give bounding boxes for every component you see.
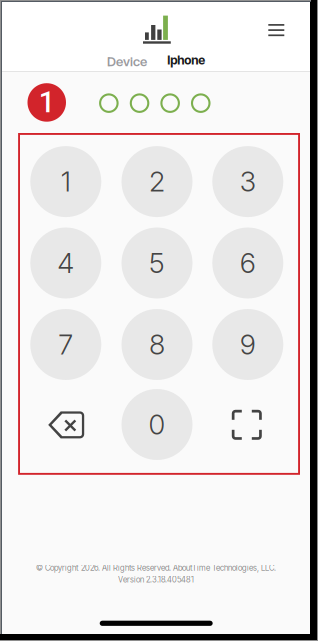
staticText: 1: [39, 86, 55, 119]
button[interactable]: Device: [105, 52, 149, 72]
staticText: Iphone: [167, 53, 205, 67]
staticText: Device: [107, 54, 147, 69]
button[interactable]: 9: [212, 309, 283, 380]
button[interactable]: 7: [30, 309, 101, 380]
button[interactable]: Menu: [258, 14, 294, 46]
button[interactable]: 2: [121, 146, 192, 217]
staticText: 6: [240, 246, 256, 280]
staticText: 2: [149, 165, 165, 198]
button[interactable]: 5: [121, 227, 192, 298]
button[interactable]: Scan QR code: [211, 389, 282, 460]
staticText: 5: [149, 246, 165, 280]
staticText: 4: [57, 246, 74, 280]
button[interactable]: 1: [30, 146, 101, 217]
staticText: 3: [240, 165, 256, 198]
staticText: 9: [240, 328, 256, 361]
button[interactable]: 8: [121, 309, 192, 380]
button[interactable]: 6: [212, 227, 283, 298]
button[interactable]: 4: [30, 227, 101, 298]
button[interactable]: Iphone: [164, 50, 208, 70]
staticText: Version 2.3.18.405481: [118, 575, 194, 584]
staticText: 7: [58, 328, 73, 361]
staticText: 8: [149, 328, 165, 361]
button[interactable]: 3: [212, 146, 283, 217]
staticText: © Copyright 2026. All Rights Reserved. A…: [36, 563, 276, 573]
button[interactable]: Delete: [31, 389, 102, 460]
staticText: 0: [148, 408, 165, 441]
staticText: 1: [61, 165, 71, 198]
button[interactable]: 0: [121, 389, 192, 460]
